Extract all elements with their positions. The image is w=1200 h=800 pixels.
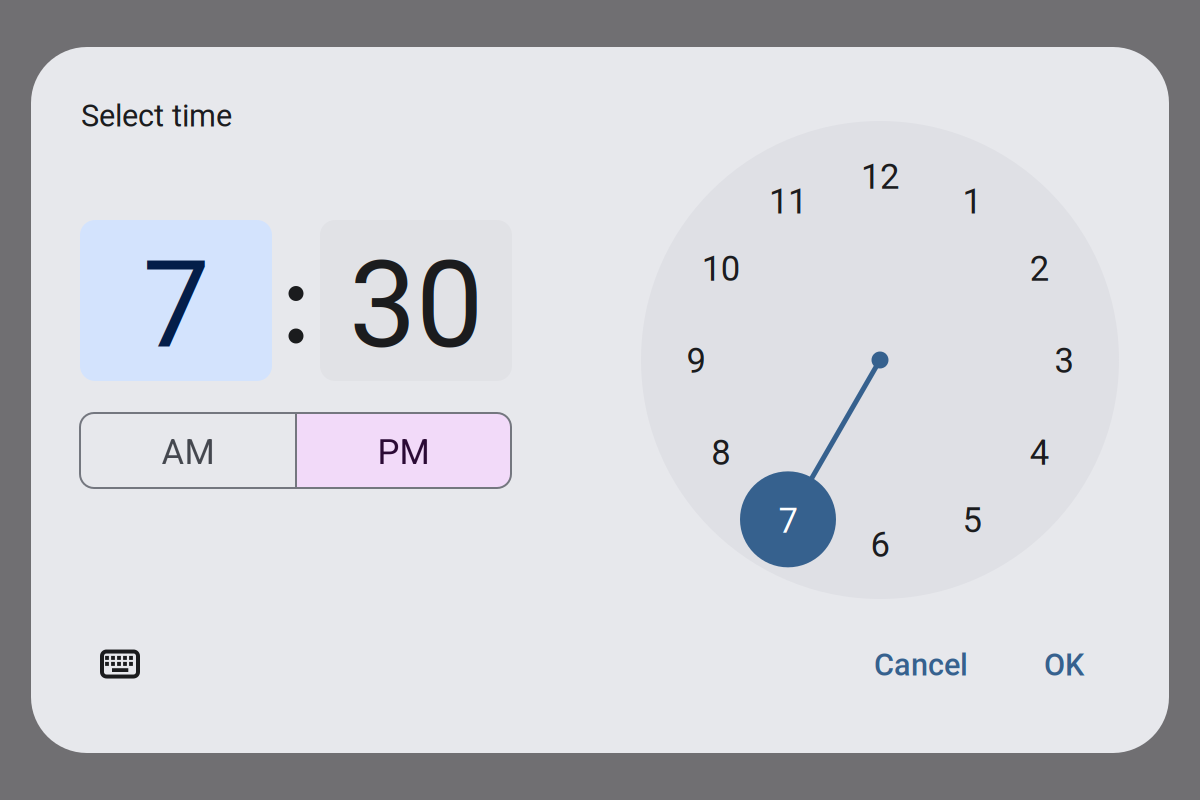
button[interactable]: 7 [80, 220, 272, 381]
staticText: 4 [1030, 433, 1049, 473]
staticText: 30 [349, 235, 483, 376]
staticText: 12 [861, 157, 899, 197]
staticText: 11 [769, 181, 807, 222]
staticText: 10 [702, 249, 740, 289]
button[interactable]: Switch to text input [100, 649, 140, 678]
button[interactable]: PM [296, 413, 511, 488]
staticText: OK [1044, 647, 1084, 683]
button[interactable]: OK [1024, 642, 1104, 688]
staticText: 8 [711, 433, 730, 473]
staticText: PM [377, 432, 429, 473]
staticText: 9 [686, 341, 705, 381]
staticText: 1 [962, 181, 981, 222]
staticText: 5 [962, 500, 981, 541]
staticText: AM [161, 432, 214, 473]
button[interactable]: AM [80, 413, 296, 488]
staticText: 7 [778, 500, 797, 541]
staticText: Cancel [874, 647, 968, 683]
staticText: 3 [1054, 341, 1073, 381]
button[interactable]: 30 [320, 220, 512, 381]
staticText: 2 [1030, 249, 1049, 289]
button[interactable]: 7 [740, 471, 836, 567]
staticText: 7 [142, 235, 209, 376]
staticText: Select time [81, 98, 232, 134]
button[interactable]: Cancel [841, 642, 1001, 688]
staticText: 6 [870, 525, 889, 565]
